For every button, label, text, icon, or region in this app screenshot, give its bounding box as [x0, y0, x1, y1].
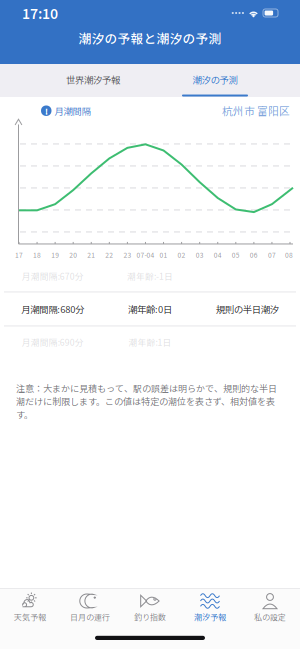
staticText: 世界潮汐予報 [66, 73, 120, 86]
staticText: 17:10 [22, 3, 58, 23]
staticText: 規則の半日潮汐 [216, 302, 279, 316]
staticText: 注意：大まかに見積もって、駅の誤差は明らかで、規則的な半日潮だけに制限します。こ… [16, 381, 277, 421]
staticText: 潮年齢:-1日 [127, 270, 173, 282]
button[interactable]: ! [41, 104, 90, 117]
staticText: 日月の運行 [70, 611, 110, 623]
staticText: 06 [250, 250, 258, 260]
button[interactable]: 杭州市 富阳区 [222, 103, 290, 118]
staticText: 19 [51, 250, 59, 260]
staticText: 20 [69, 250, 77, 260]
staticText: 釣り指数 [134, 611, 166, 623]
staticText: 18 [33, 250, 41, 260]
button[interactable]: 天気予報 [0, 589, 60, 627]
staticText: 01 [159, 250, 167, 260]
staticText: 杭州市 富阳区 [222, 103, 290, 118]
staticText: 23 [123, 250, 131, 260]
staticText: 08 [285, 250, 293, 260]
staticText: 潮汐の予報と潮汐の予測 [78, 29, 221, 47]
staticText: 月潮間隔 [54, 104, 90, 117]
staticText: 07 [268, 250, 276, 260]
staticText: 潮年齢:0日 [128, 302, 172, 316]
staticText: 21 [87, 250, 95, 260]
staticText: 私の設定 [254, 611, 286, 623]
staticText: 17 [15, 250, 23, 260]
button[interactable]: 世界潮汐予報 [32, 64, 154, 96]
button[interactable]: 月潮間隔:680分 [4, 292, 296, 325]
button[interactable]: 日月の運行 [60, 589, 120, 627]
button[interactable]: 月潮間隔:690分 [4, 326, 296, 357]
staticText: 02 [178, 250, 186, 260]
button[interactable]: 潮汐の予測 [154, 64, 276, 96]
staticText: 05 [232, 250, 240, 260]
staticText: ! [45, 104, 48, 117]
button[interactable]: 潮汐予報 [180, 589, 240, 627]
staticText: 月潮間隔:690分 [22, 336, 84, 348]
button[interactable]: 私の設定 [240, 589, 300, 627]
button[interactable]: 釣り指数 [120, 589, 180, 627]
staticText: 07-04 [136, 250, 154, 260]
staticText: 潮汐予報 [194, 611, 226, 623]
staticText: 03 [196, 250, 204, 260]
staticText: 22 [105, 250, 113, 260]
staticText: 月潮間隔:680分 [21, 302, 84, 316]
button[interactable]: 月潮間隔:670分 [4, 260, 296, 291]
staticText: 天気予報 [14, 611, 46, 623]
staticText: 月潮間隔:670分 [22, 270, 84, 282]
staticText: 04 [214, 250, 222, 260]
staticText: 潮汐の予測 [192, 73, 237, 86]
staticText: 潮年齢:1日 [128, 336, 171, 348]
